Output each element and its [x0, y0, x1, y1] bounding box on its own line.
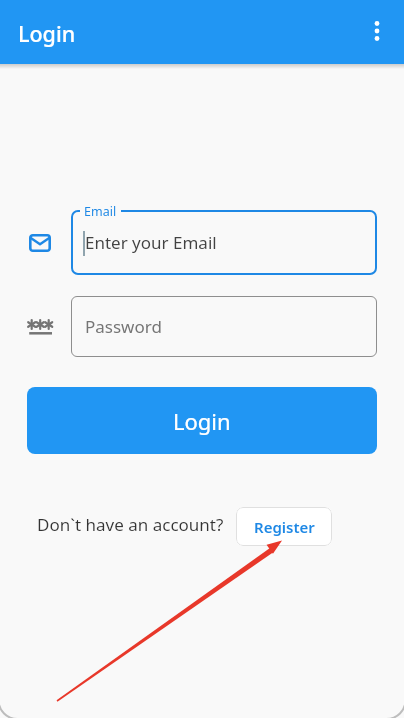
staticText: Don`t have an account? [37, 513, 224, 536]
button[interactable]: Password [71, 296, 377, 357]
staticText: Register [254, 517, 315, 537]
button[interactable] [357, 12, 397, 52]
button[interactable]: Login [27, 387, 377, 454]
staticText: Login [18, 19, 76, 48]
staticText: Login [173, 406, 231, 436]
staticText: Email [84, 203, 117, 220]
staticText: Password [85, 315, 162, 338]
button[interactable]: Register [236, 507, 332, 546]
button[interactable]: Enter your Email [71, 210, 377, 275]
staticText: Enter your Email [85, 231, 217, 254]
